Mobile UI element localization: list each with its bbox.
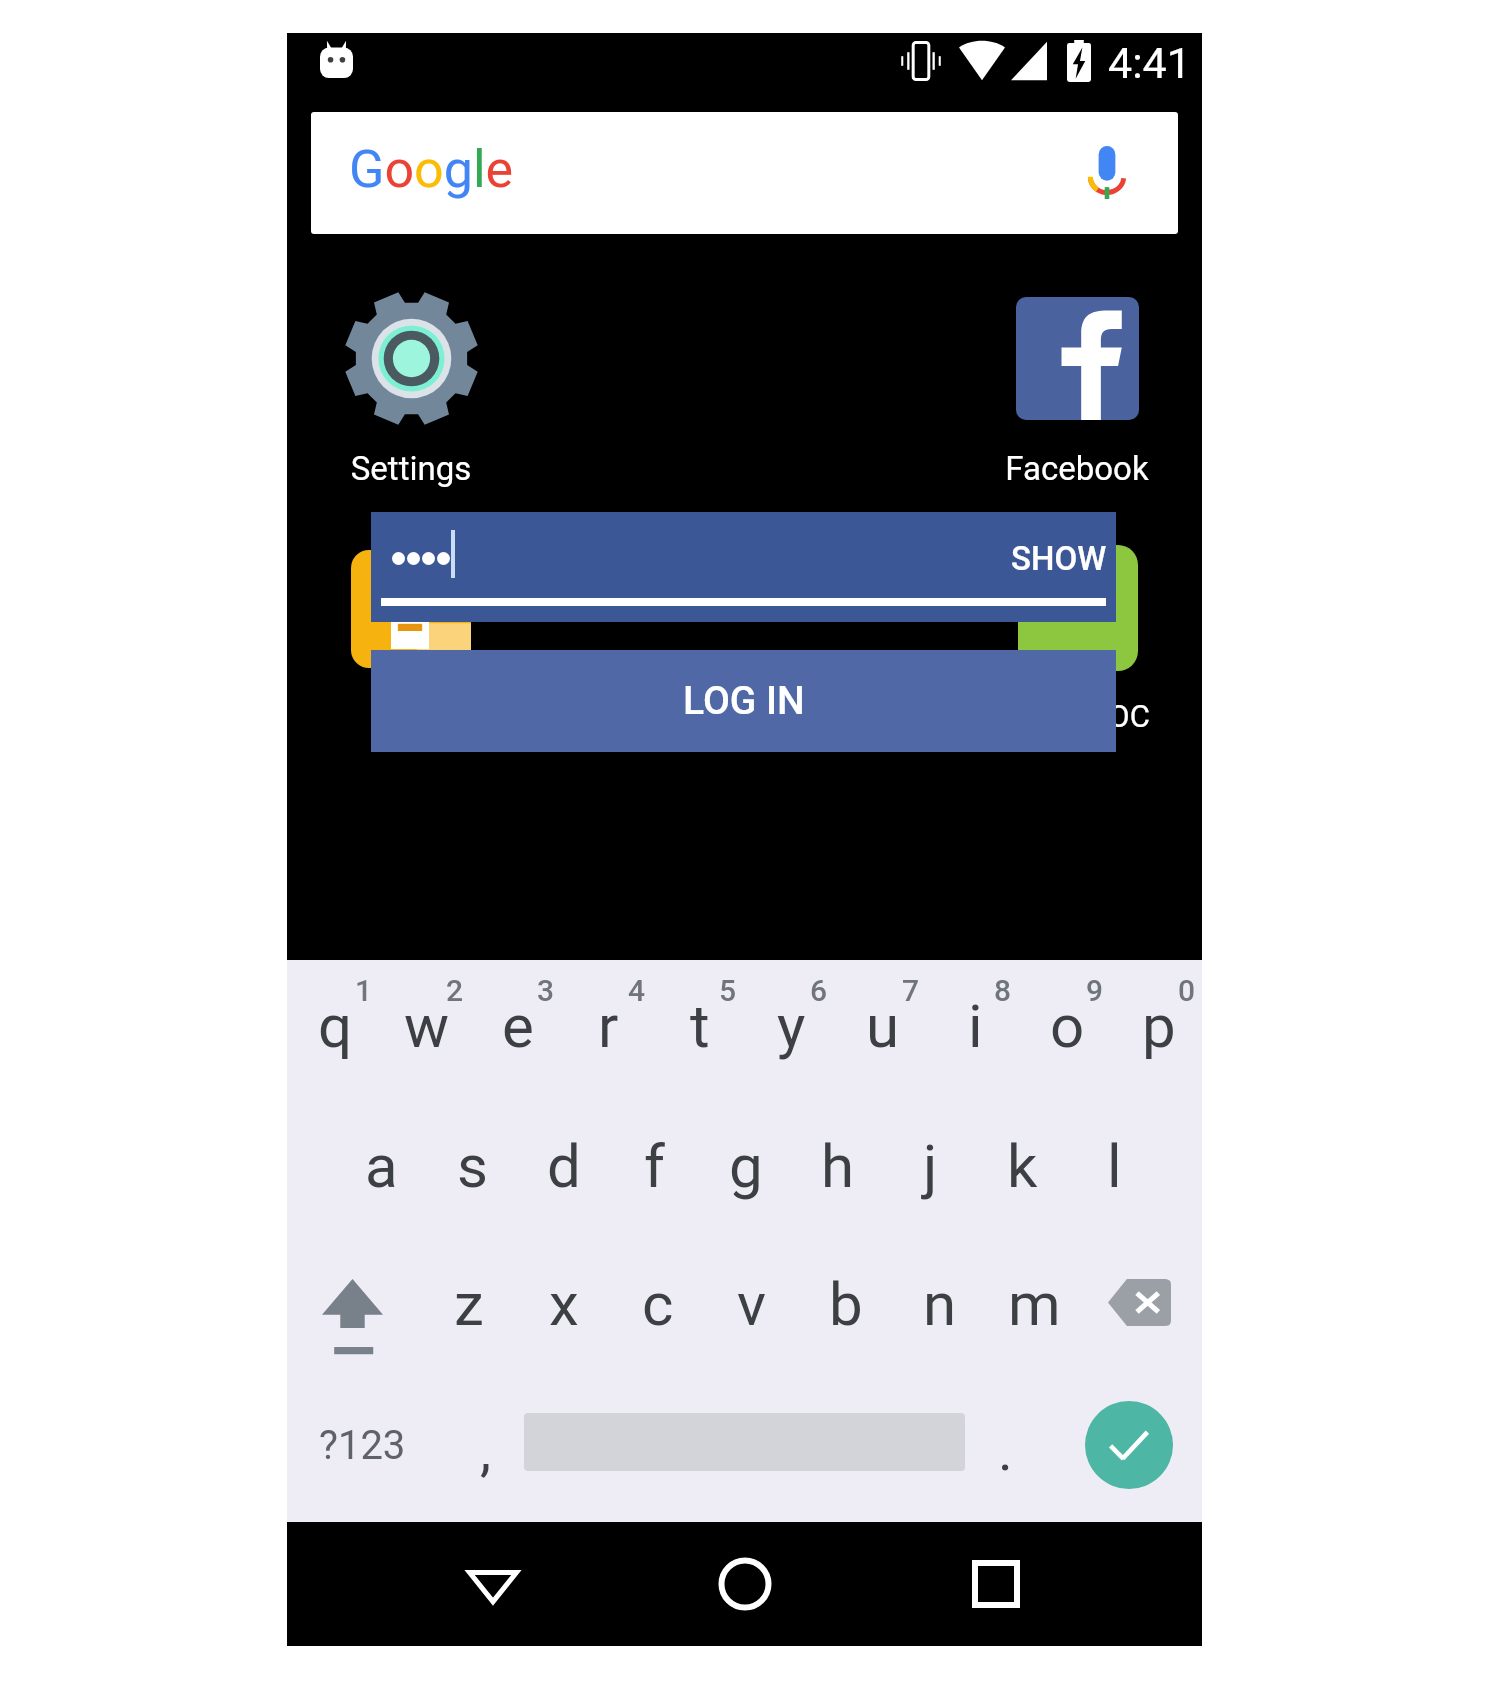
button[interactable]: 3 <box>469 963 560 1113</box>
staticText: e <box>502 991 534 1061</box>
button[interactable]: v <box>699 1265 793 1403</box>
staticText: u <box>866 991 900 1061</box>
staticText: k <box>1007 1131 1038 1201</box>
staticText: Settings <box>321 449 501 488</box>
staticText: 1 <box>355 973 373 1008</box>
staticText: r <box>598 991 619 1061</box>
staticText: d <box>547 1131 581 1201</box>
button[interactable]: SHOW <box>371 512 1116 622</box>
staticText: y <box>777 991 806 1061</box>
staticText: Facebook <box>987 449 1167 488</box>
button[interactable]: Home <box>700 1539 790 1629</box>
button[interactable]: . <box>965 1400 1045 1510</box>
staticText: a <box>365 1131 398 1201</box>
button[interactable]: 8 <box>926 963 1018 1113</box>
button[interactable]: 9 <box>1018 963 1110 1113</box>
staticText: w <box>404 991 450 1061</box>
staticText: . <box>998 1418 1013 1484</box>
staticText: n <box>923 1269 957 1339</box>
staticText: x <box>549 1269 579 1339</box>
button[interactable]: LOG IN <box>371 650 1116 752</box>
staticText: 8 <box>994 973 1012 1008</box>
button[interactable]: n <box>887 1265 981 1403</box>
button[interactable]: 1 <box>287 963 378 1113</box>
staticText: 4 <box>628 973 646 1008</box>
button[interactable]: Back <box>448 1539 538 1629</box>
staticText: , <box>480 1418 492 1484</box>
staticText: m <box>1008 1269 1061 1339</box>
staticText: o <box>1050 991 1085 1061</box>
staticText: ?123 <box>319 1422 406 1469</box>
staticText: 0 <box>1178 973 1196 1008</box>
button[interactable]: k <box>972 1128 1064 1266</box>
staticText: s <box>457 1131 488 1201</box>
button[interactable]: s <box>423 1128 514 1266</box>
staticText: f <box>644 1131 665 1201</box>
staticText: LOG IN <box>683 678 805 724</box>
staticText: l <box>1107 1131 1122 1201</box>
button[interactable]: Settings <box>311 283 511 493</box>
staticText: 3 <box>537 973 555 1008</box>
button[interactable]: h <box>788 1128 880 1266</box>
staticText: Google <box>349 139 514 200</box>
button[interactable]: Facebook <box>977 283 1177 493</box>
button[interactable]: 0 <box>1110 963 1202 1113</box>
staticText: 7 <box>902 973 920 1008</box>
button[interactable]: d <box>514 1128 605 1266</box>
button[interactable]: z <box>415 1265 510 1403</box>
button[interactable]: Google <box>311 112 1178 234</box>
staticText: c <box>642 1269 674 1339</box>
button[interactable]: f <box>605 1128 696 1266</box>
staticText: v <box>737 1269 767 1339</box>
staticText: z <box>454 1269 484 1339</box>
button[interactable]: c <box>605 1265 699 1403</box>
staticText: p <box>1142 991 1176 1061</box>
button[interactable]: m <box>981 1265 1075 1403</box>
button[interactable]: Enter <box>1045 1400 1202 1510</box>
staticText: 5 <box>719 973 737 1008</box>
button[interactable]: l <box>1064 1128 1156 1266</box>
staticText: q <box>318 991 353 1061</box>
button[interactable]: 6 <box>742 963 834 1113</box>
staticText: DOC <box>1088 698 1150 734</box>
staticText: 2 <box>446 973 464 1008</box>
button[interactable]: SHOW <box>1011 539 1107 578</box>
staticText: 9 <box>1086 973 1104 1008</box>
button[interactable]: Shift <box>287 1265 415 1403</box>
button[interactable]: x <box>510 1265 605 1403</box>
button[interactable]: ?123 <box>297 1400 447 1510</box>
button[interactable]: j <box>880 1128 972 1266</box>
button[interactable] <box>524 1400 965 1510</box>
staticText: b <box>829 1269 863 1339</box>
button[interactable]: 2 <box>378 963 469 1113</box>
staticText: 4:41 <box>1108 38 1191 88</box>
staticText: h <box>821 1131 855 1201</box>
staticText: g <box>729 1131 763 1201</box>
button[interactable]: a <box>332 1128 423 1266</box>
button[interactable]: 4 <box>560 963 651 1113</box>
button[interactable]: g <box>696 1128 788 1266</box>
button[interactable]: 7 <box>834 963 926 1113</box>
button[interactable]: , <box>447 1400 524 1510</box>
button[interactable]: Recents <box>951 1539 1041 1629</box>
staticText: j <box>923 1131 938 1201</box>
staticText: t <box>690 991 710 1061</box>
staticText: i <box>968 991 983 1061</box>
button[interactable]: Voice search <box>1088 145 1126 199</box>
staticText: 6 <box>810 973 828 1008</box>
button[interactable]: Backspace <box>1075 1265 1202 1403</box>
button[interactable]: 5 <box>651 963 742 1113</box>
button[interactable]: b <box>793 1265 887 1403</box>
